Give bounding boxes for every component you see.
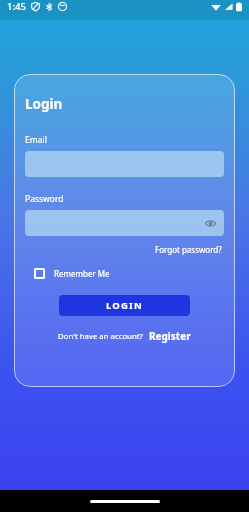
- button[interactable]: Forgot password?: [153, 242, 224, 257]
- button[interactable]: Remember Me: [25, 268, 110, 279]
- staticText: Password: [25, 193, 64, 205]
- staticText: Register: [149, 329, 191, 343]
- button[interactable]: Show password: [25, 210, 224, 236]
- staticText: LOGIN: [106, 299, 143, 312]
- staticText: Login: [25, 95, 63, 113]
- staticText: 1:45: [7, 0, 26, 13]
- staticText: Forgot password?: [155, 244, 222, 255]
- other: Home: [90, 500, 160, 503]
- button[interactable]: Register: [149, 329, 191, 343]
- staticText: Remember Me: [54, 268, 110, 279]
- button[interactable]: Show password: [204, 217, 217, 230]
- staticText: Don't have an account?: [58, 331, 143, 342]
- staticText: Email: [25, 134, 47, 146]
- button[interactable]: LOGIN: [59, 295, 190, 316]
